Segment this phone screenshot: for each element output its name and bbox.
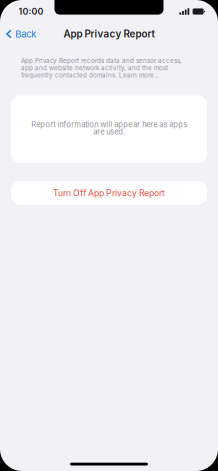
staticText: App Privacy Report bbox=[63, 28, 154, 40]
button[interactable]: Back bbox=[0, 24, 44, 44]
staticText: Report information will appear here as a… bbox=[31, 120, 187, 136]
staticText: Back bbox=[15, 28, 36, 40]
staticText: 10:00 bbox=[18, 6, 43, 17]
staticText: Turn Off App Privacy Report bbox=[53, 188, 165, 198]
staticText: App Privacy Report records data and sens… bbox=[21, 57, 182, 79]
button[interactable]: Turn Off App Privacy Report bbox=[0, 181, 218, 205]
